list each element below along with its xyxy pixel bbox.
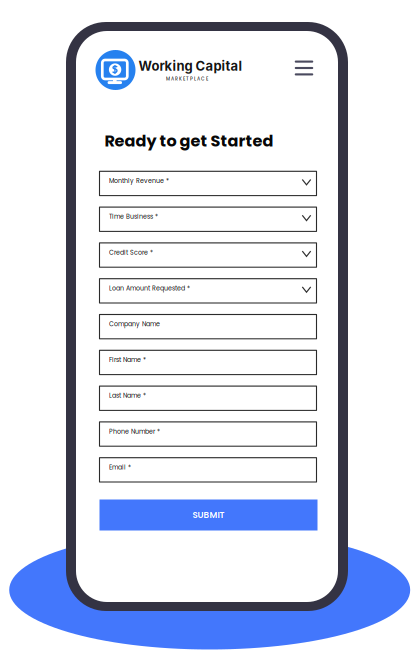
button[interactable]: First Name * bbox=[99, 350, 316, 375]
staticText: SUBMIT bbox=[192, 509, 224, 521]
staticText: Ready to get Started bbox=[104, 130, 273, 152]
staticText: First Name * bbox=[109, 355, 146, 364]
staticText: Last Name * bbox=[109, 391, 146, 400]
staticText: Working Capital bbox=[138, 58, 242, 74]
button[interactable]: Company Name bbox=[99, 314, 316, 339]
staticText: Email * bbox=[109, 463, 131, 472]
staticText: Loan Amount Requested * bbox=[109, 284, 190, 293]
button[interactable]: SUBMIT bbox=[99, 499, 317, 530]
staticText: Company Name bbox=[109, 320, 160, 328]
staticText: M A R K E T P L A C E bbox=[166, 76, 208, 82]
button[interactable]: Email * bbox=[99, 458, 316, 482]
staticText: Monthly Revenue * bbox=[109, 176, 169, 185]
button[interactable]: Menu bbox=[291, 55, 317, 81]
staticText: Time Business * bbox=[109, 212, 158, 221]
button[interactable]: Credit Score * bbox=[99, 243, 316, 267]
button[interactable]: Monthly Revenue * bbox=[99, 171, 316, 196]
button[interactable]: Phone Number * bbox=[99, 422, 316, 446]
button[interactable]: Time Business * bbox=[99, 207, 316, 231]
staticText: Phone Number * bbox=[109, 427, 160, 436]
button[interactable]: Last Name * bbox=[99, 386, 316, 410]
button[interactable]: Loan Amount Requested * bbox=[99, 279, 316, 303]
staticText: Credit Score * bbox=[109, 248, 153, 257]
